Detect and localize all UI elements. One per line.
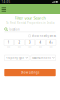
staticText: BHK: [50, 46, 53, 48]
button[interactable]: 2: [15, 39, 24, 48]
staticText: 2: [18, 41, 20, 44]
button[interactable]: location: [4, 27, 56, 32]
button[interactable]: Maximum Rent: [31, 55, 56, 61]
staticText: 4: [40, 41, 42, 44]
button[interactable]: Show Listings: [4, 69, 56, 76]
button[interactable]: 4: [36, 39, 45, 48]
staticText: location: [9, 28, 20, 31]
staticText: Show Listings: [21, 71, 39, 74]
staticText: show nearby areas: [32, 34, 56, 38]
staticText: 4+: [49, 41, 53, 44]
button[interactable]: 1: [4, 39, 14, 48]
staticText: BHK: [28, 46, 31, 48]
button[interactable]: show nearby areas: [29, 34, 56, 38]
staticText: Filter your Search: [14, 15, 45, 20]
staticText: Property Type: [5, 56, 24, 60]
button[interactable]: Property Type: [4, 55, 29, 61]
staticText: Maximum Rent: [32, 56, 51, 60]
staticText: 1: [8, 41, 10, 44]
staticText: To Find Rental Properties in India: [6, 21, 54, 25]
button[interactable]: 4+: [46, 39, 56, 48]
staticText: 3: [29, 41, 31, 44]
button[interactable]: 3: [25, 39, 35, 48]
button[interactable]: Menu: [0, 4, 8, 14]
staticText: 14:05: [2, 0, 11, 4]
